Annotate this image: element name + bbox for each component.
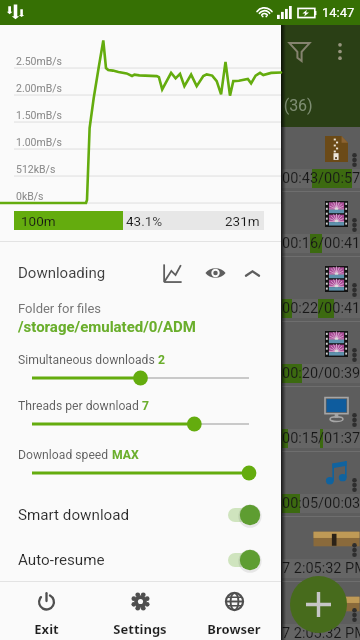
button[interactable]: More options: [326, 37, 354, 65]
staticText: 00:15/01:37: [282, 430, 360, 447]
staticText: Threads per download: [18, 399, 142, 413]
staticText: Download speed: [18, 448, 112, 462]
button[interactable]: Show hidden: [197, 253, 233, 293]
staticText: Folder for files: [18, 301, 102, 316]
staticText: Downloading: [18, 264, 106, 282]
button[interactable]: Collapse: [234, 253, 270, 293]
button[interactable]: 00:15/01:37: [0, 387, 360, 452]
button[interactable]: 7 2:05:32 PM: [0, 582, 360, 640]
button[interactable]: 00:05/00:03: [0, 452, 360, 517]
staticText: 00:05/00:03: [282, 495, 360, 512]
staticText: 00:43/00:57: [282, 170, 360, 187]
button[interactable]: Add download: [290, 576, 347, 633]
staticText: 0kB/s: [16, 190, 44, 202]
button[interactable]: 00:22/00:41: [0, 257, 360, 322]
staticText: 7 2:05:32 PM: [282, 625, 360, 640]
button[interactable]: Browser: [187, 582, 281, 640]
staticText: MAX: [112, 448, 139, 462]
button[interactable]: Speed graph: [154, 253, 190, 293]
staticText: 1.00mB/s: [16, 136, 62, 148]
button[interactable]: 00:16/00:41: [0, 192, 360, 257]
staticText: Auto-resume: [18, 551, 105, 569]
button[interactable]: 00:43/00:57: [0, 127, 360, 192]
button[interactable]: 7 2:05:32 PM: [0, 517, 360, 582]
staticText: 43.1%: [126, 213, 163, 229]
staticText: 00:22/00:41: [282, 300, 360, 317]
staticText: Simultaneous downloads: [18, 353, 158, 367]
staticText: 2: [158, 353, 165, 367]
button[interactable]: Threads per download: [0, 397, 281, 439]
staticText: 00:20/00:39: [282, 365, 360, 382]
button[interactable]: Folder for files: [0, 300, 281, 344]
staticText: 7 2:05:32 PM: [282, 560, 360, 577]
staticText: 2.00mB/s: [16, 82, 62, 94]
staticText: Browser: [207, 620, 261, 638]
button[interactable]: Exit: [0, 582, 93, 640]
staticText: 100m: [21, 213, 56, 229]
staticText: Exit: [34, 620, 59, 638]
staticText: 7: [142, 399, 149, 413]
staticText: 1.50mB/s: [16, 109, 62, 121]
button[interactable]: 00:20/00:39: [0, 322, 360, 387]
button[interactable]: Auto-resume: [0, 539, 281, 581]
staticText: Settings: [113, 620, 167, 638]
button[interactable]: Filter: [285, 37, 313, 65]
button[interactable]: Settings: [93, 582, 187, 640]
button[interactable]: Download speed: [0, 446, 281, 488]
staticText: 00:16/00:41: [282, 235, 360, 252]
staticText: 2.50mB/s: [16, 55, 62, 67]
staticText: 231m: [225, 213, 260, 229]
staticText: ɔ (36): [272, 94, 313, 116]
staticText: 512kB/s: [16, 163, 56, 175]
staticText: /storage/emulated/0/ADM: [18, 318, 196, 336]
button[interactable]: Smart download: [0, 494, 281, 536]
button[interactable]: Simultaneous downloads: [0, 351, 281, 393]
staticText: Smart download: [18, 506, 130, 524]
button[interactable]: 100m: [14, 211, 264, 230]
staticText: 14:47: [322, 5, 355, 20]
